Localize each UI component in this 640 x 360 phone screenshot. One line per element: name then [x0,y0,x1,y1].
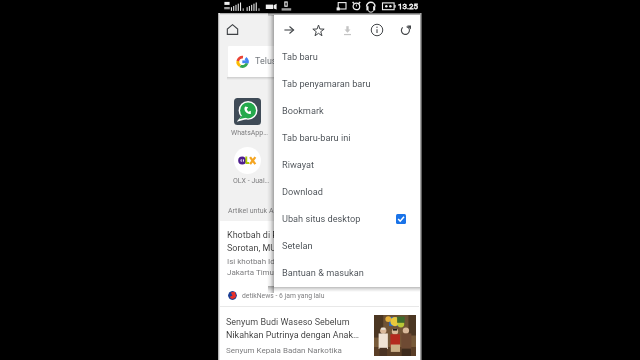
staticText: Setelan [282,240,313,251]
button[interactable]: WhatsApp shortcut [234,98,261,125]
button[interactable]: Forward [274,15,304,45]
staticText: Download [282,186,323,197]
staticText: Senyum Kepala Badan Narkotika [226,346,342,355]
staticText: detikNews - 6 jam yang lalu [242,292,325,300]
button[interactable]: Bookmark [304,15,333,45]
button[interactable]: Page info [362,15,391,45]
staticText: Sorotan, MUI Buka Suara [227,243,326,254]
button[interactable]: OLX shortcut [234,147,261,174]
staticText: Riwayat [282,159,315,170]
button[interactable]: Ubah situs desktop [274,205,420,232]
button[interactable] [218,221,420,309]
button[interactable]: Bantuan & masukan [274,259,420,286]
button[interactable] [218,309,420,360]
staticText: Jakarta Timur jadi sorotan [227,268,321,277]
staticText: Ubah situs desktop [282,213,361,224]
staticText: Isi khotbah Idul Adha di Masjid [227,257,336,266]
staticText: Tab baru-baru ini [282,132,351,143]
staticText: 13.25 [398,2,419,11]
staticText: Khotbah di Palestina Jadi [227,230,329,241]
staticText: Bantuan & masukan [282,267,364,278]
button[interactable]: Telusuri atau ketikkan [228,46,410,77]
button[interactable]: Download [333,15,362,45]
staticText: Tab penyamaran baru [282,78,371,89]
button[interactable]: Riwayat [274,151,420,178]
staticText: OLX - Jual… [233,177,270,185]
staticText: Telusuri atau ketikkan [255,56,343,67]
staticText: Tab baru [282,51,318,62]
staticText: Senyum Budi Waseso Sebelum [226,317,350,328]
button[interactable]: Tab baru-baru ini [274,124,420,151]
button[interactable]: Tab baru [274,43,420,70]
button[interactable]: Download [274,178,420,205]
staticText: Nikahkan Putrinya dengan Anak… [226,330,360,341]
button[interactable]: Reload [391,15,420,45]
button[interactable]: Tab penyamaran baru [274,70,420,97]
staticText: WhatsApp… [231,129,268,137]
button[interactable]: Home [227,24,238,35]
staticText: Artikel untuk Anda [228,207,286,215]
button[interactable]: Bookmark [274,97,420,124]
staticText: Bookmark [282,105,324,116]
button[interactable]: Setelan [274,232,420,259]
